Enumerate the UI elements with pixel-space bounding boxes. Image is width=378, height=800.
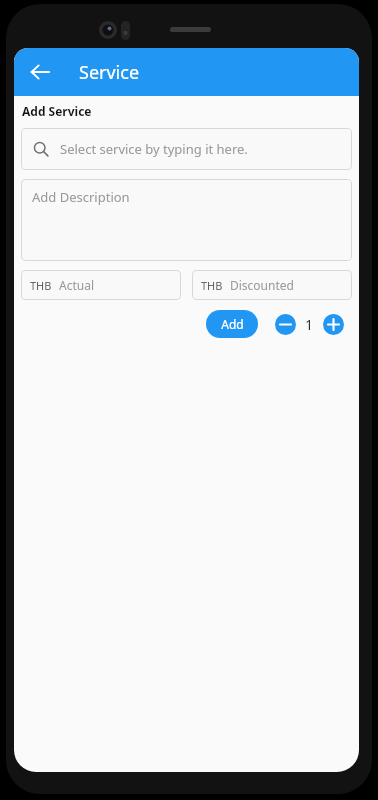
button[interactable]: THB — [192, 270, 352, 300]
staticText: THB — [201, 278, 223, 293]
button[interactable]: Increase quantity — [323, 314, 344, 335]
staticText: Add Service — [22, 103, 92, 119]
staticText: Service — [79, 60, 140, 85]
staticText: Discounted — [230, 277, 294, 293]
staticText: Actual — [59, 277, 95, 293]
button[interactable]: Back — [20, 52, 60, 92]
staticText: Add — [221, 316, 244, 332]
staticText: 1 — [305, 315, 314, 334]
staticText: Add Description — [32, 188, 130, 206]
button[interactable]: Decrease quantity — [275, 314, 296, 335]
staticText: THB — [30, 278, 52, 293]
staticText: Select service by typing it here. — [60, 140, 248, 158]
button[interactable]: Add Description — [21, 179, 352, 261]
button[interactable]: Select service by typing it here. — [21, 128, 352, 170]
button[interactable]: Add — [206, 310, 258, 338]
button[interactable]: THB — [21, 270, 181, 300]
